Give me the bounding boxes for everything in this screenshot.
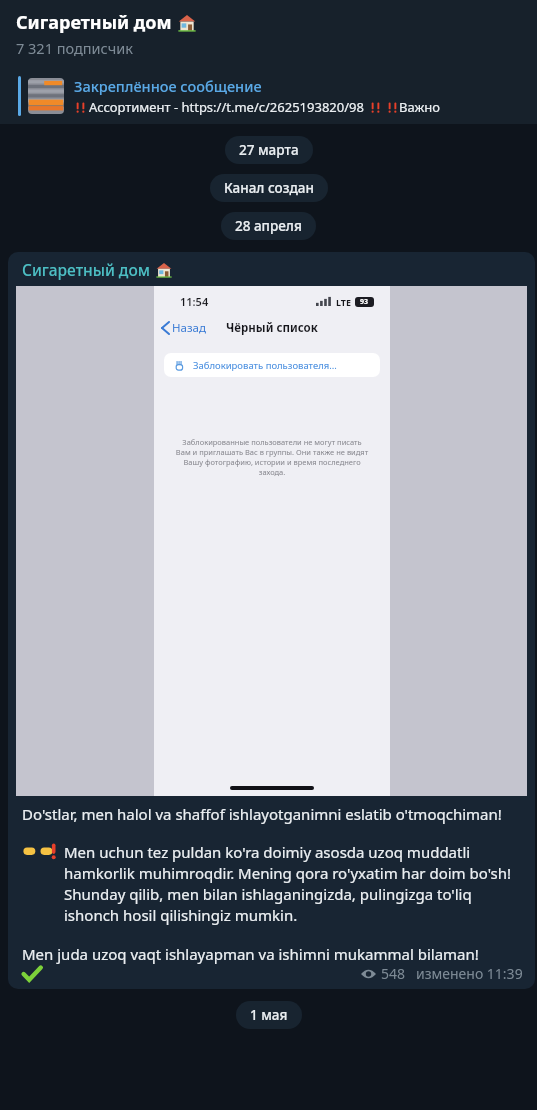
staticText: Men uchun tez puldan ko'ra doimiy asosda…: [64, 842, 523, 926]
button[interactable]: Сигаретный дом: [0, 0, 537, 68]
staticText: Назад: [172, 320, 206, 336]
button[interactable]: Назад: [162, 320, 206, 336]
staticText: Сигаретный дом: [22, 259, 150, 280]
staticText: Do'stlar, men halol va shaffof ishlayotg…: [22, 804, 502, 824]
staticText: Сигаретный дом: [16, 10, 172, 35]
button[interactable]: Сигаретный дом: [8, 252, 535, 989]
staticText: 93: [360, 297, 369, 307]
staticText: 1 мая: [250, 1006, 288, 1024]
button[interactable]: Канал создан: [210, 174, 328, 202]
button[interactable]: Заблокировать пользователя...: [164, 353, 380, 377]
staticText: 7 321 подписчик: [16, 38, 133, 58]
staticText: 28 апреля: [235, 217, 302, 235]
staticText: 27 марта: [239, 141, 299, 159]
staticText: Закреплённое сообщение: [74, 76, 262, 96]
button[interactable]: 28 апреля: [221, 212, 316, 240]
staticText: Заблокировать пользователя...: [193, 359, 337, 372]
staticText: 548: [381, 964, 406, 983]
button[interactable]: 1 мая: [236, 1001, 302, 1029]
button[interactable]: 27 марта: [225, 136, 313, 164]
staticText: Men juda uzoq vaqt ishlayapman va ishimn…: [22, 944, 479, 964]
staticText: Заблокированные пользователи не могут пи…: [164, 437, 380, 477]
staticText: LTE: [336, 296, 352, 308]
staticText: Чёрный список: [226, 320, 318, 336]
staticText: 11:54: [180, 294, 209, 309]
button[interactable]: Закреплённое сообщение: [0, 68, 537, 124]
staticText: Канал создан: [224, 179, 314, 197]
staticText: изменено 11:39: [416, 964, 523, 983]
staticText: Ассортимент - https://t.me/c/2625193820/…: [89, 98, 364, 116]
staticText: Важно: [399, 98, 440, 116]
